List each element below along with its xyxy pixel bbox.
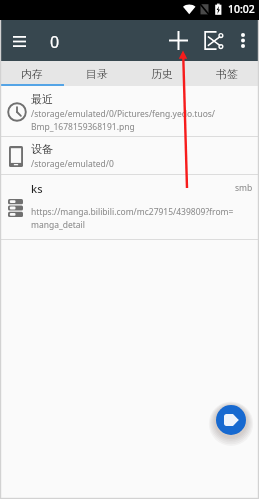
button[interactable]: Add	[165, 20, 191, 61]
staticText: 10:02	[228, 2, 255, 16]
button[interactable]: Menu	[5, 27, 33, 55]
button[interactable]: 最近	[0, 86, 259, 136]
staticText: 最近	[31, 92, 53, 106]
button[interactable]: 历史	[129, 61, 194, 86]
button[interactable]: ks	[0, 175, 259, 239]
staticText: /storage/emulated/0	[31, 158, 114, 170]
button[interactable]: 书签	[194, 61, 259, 86]
staticText: Bmp_1678159368191.png	[31, 121, 135, 133]
staticText: 书签	[216, 67, 238, 81]
staticText: smb	[235, 182, 253, 194]
button[interactable]: More options	[226, 20, 259, 61]
staticText: ks	[31, 181, 43, 196]
staticText: https://manga.bilibili.com/mc27915/43980…	[31, 206, 234, 218]
staticText: 历史	[151, 67, 173, 81]
staticText: 内存	[21, 67, 43, 81]
button[interactable]: 内存	[0, 61, 64, 86]
staticText: /storage/emulated/0/Pictures/feng.yedo.t…	[31, 108, 216, 120]
button[interactable]: Cut	[191, 20, 226, 61]
staticText: 设备	[31, 142, 53, 156]
staticText: 0	[50, 31, 60, 53]
button[interactable]: 目录	[64, 61, 129, 86]
button[interactable]: New tag	[216, 405, 246, 435]
button[interactable]: 设备	[0, 137, 259, 174]
staticText: 目录	[86, 67, 108, 81]
staticText: manga_detail	[31, 219, 85, 231]
